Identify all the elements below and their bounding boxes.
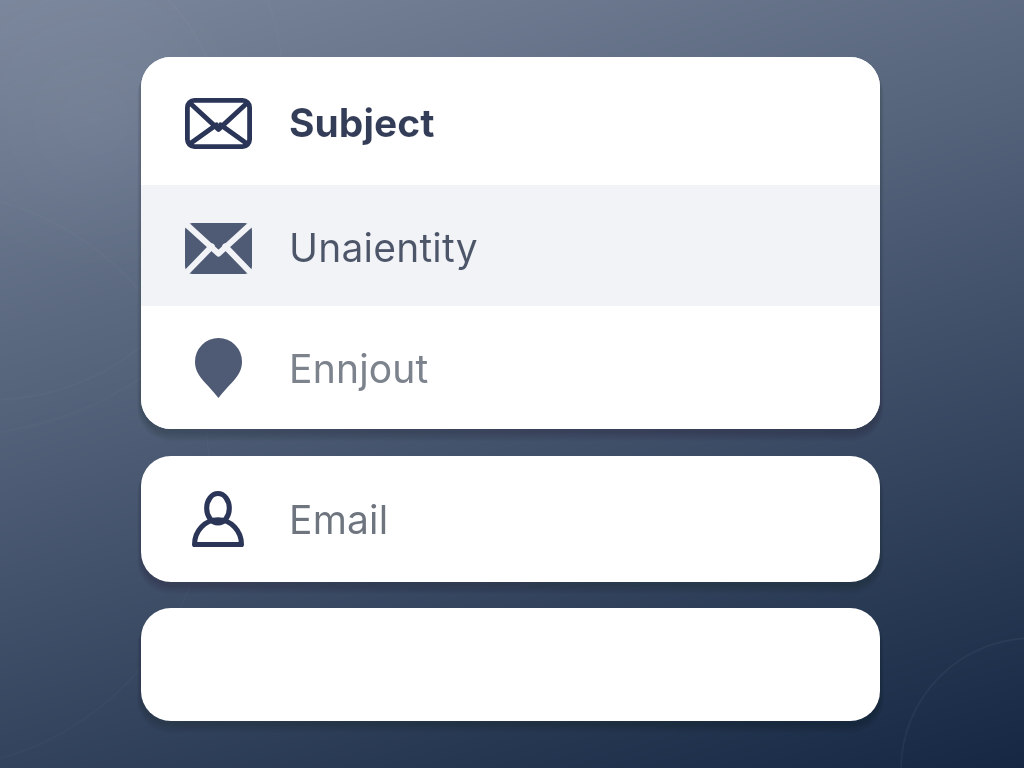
- staticText: Unaientity: [289, 224, 478, 271]
- button[interactable]: Unaientity: [141, 185, 880, 306]
- button[interactable]: Subject: [141, 57, 880, 185]
- button[interactable]: Empty field: [141, 608, 880, 721]
- button[interactable]: Email: [141, 456, 880, 582]
- staticText: Email: [289, 496, 389, 543]
- staticText: Subject: [289, 99, 435, 146]
- button[interactable]: Ennjout: [141, 306, 880, 429]
- staticText: Ennjout: [289, 345, 429, 392]
